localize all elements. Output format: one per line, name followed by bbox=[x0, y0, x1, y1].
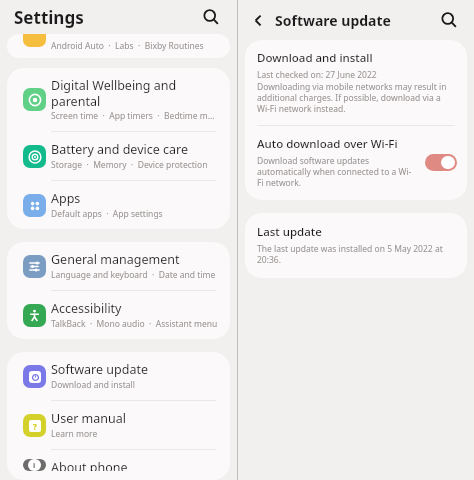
staticText: Apps bbox=[51, 190, 81, 207]
button[interactable]: General management bbox=[7, 242, 230, 291]
staticText: About phone bbox=[51, 459, 128, 471]
staticText: Software update bbox=[275, 11, 391, 30]
button[interactable]: Search bbox=[438, 9, 460, 31]
staticText: Download and install bbox=[51, 379, 135, 391]
staticText: Download and install bbox=[257, 50, 373, 66]
staticText: General management bbox=[51, 251, 180, 268]
staticText: Default apps · App settings bbox=[51, 208, 163, 220]
staticText: Learn more bbox=[51, 428, 98, 440]
button[interactable]: Last update bbox=[245, 213, 467, 278]
staticText: i bbox=[33, 460, 36, 470]
staticText: Android Auto · Labs · Bixby Routines bbox=[51, 40, 204, 52]
button[interactable]: Battery and device care bbox=[7, 132, 230, 181]
staticText: User manual bbox=[51, 410, 126, 427]
staticText: Screen time · App timers · Bedtime mode bbox=[51, 110, 218, 122]
staticText: Settings bbox=[14, 6, 84, 29]
button[interactable]: Download and install bbox=[245, 40, 467, 125]
button[interactable]: ? bbox=[7, 401, 230, 450]
staticText: Software update bbox=[51, 361, 148, 378]
button[interactable]: Apps bbox=[7, 181, 230, 229]
staticText: Accessibility bbox=[51, 300, 122, 317]
staticText: Last checked on: 27 June 2022 bbox=[257, 69, 377, 81]
button[interactable]: Auto download toggle bbox=[425, 154, 457, 171]
staticText: ? bbox=[33, 421, 37, 432]
button[interactable]: i bbox=[7, 450, 230, 480]
staticText: Last update bbox=[257, 224, 322, 240]
button[interactable]: Software update bbox=[7, 352, 230, 401]
staticText: Downloading via mobile networks may resu… bbox=[257, 81, 455, 114]
staticText: Auto download over Wi-Fi bbox=[257, 136, 398, 152]
staticText: Download software updates automatically … bbox=[257, 155, 417, 188]
staticText: Storage · Memory · Device protection bbox=[51, 159, 208, 171]
staticText: Digital Wellbeing and parental controls bbox=[51, 77, 218, 109]
button[interactable]: Accessibility bbox=[7, 291, 230, 339]
staticText: The last update was installed on 5 May 2… bbox=[257, 243, 455, 265]
button[interactable]: Back bbox=[247, 9, 269, 31]
button[interactable]: Digital Wellbeing and parental controls bbox=[7, 68, 230, 132]
button[interactable]: Auto download over Wi-Fi bbox=[245, 126, 467, 200]
staticText: Language and keyboard · Date and time bbox=[51, 269, 216, 281]
button[interactable]: Search bbox=[199, 5, 223, 29]
button[interactable]: Android Auto · Labs · Bixby Routines bbox=[7, 34, 230, 58]
staticText: TalkBack · Mono audio · Assistant menu bbox=[51, 318, 218, 330]
staticText: Battery and device care bbox=[51, 141, 189, 158]
